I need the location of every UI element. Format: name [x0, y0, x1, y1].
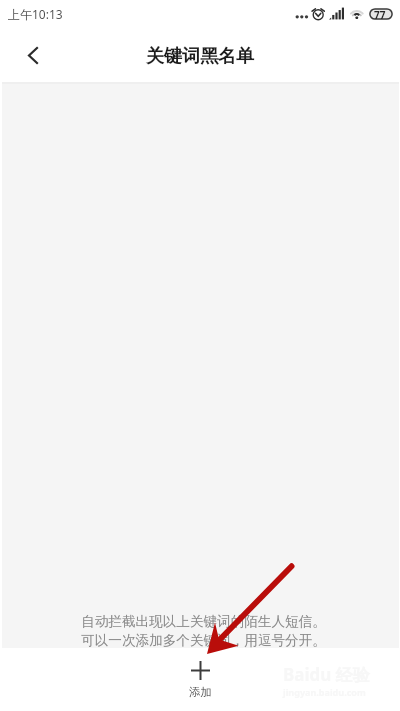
staticText: Baidu 经验: [283, 663, 370, 686]
staticText: 添加: [189, 685, 212, 699]
staticText: 77: [374, 8, 386, 20]
staticText: 上午10:13: [8, 6, 63, 22]
staticText: jingyan.baidu.com: [283, 686, 366, 698]
staticText: 关键词黑名单: [146, 45, 254, 68]
staticText: 可以一次添加多个关键词，用逗号分开。: [81, 632, 326, 649]
staticText: 自动拦截出现以上关键词的陌生人短信。: [81, 613, 326, 630]
button[interactable]: Back: [0, 30, 52, 82]
button[interactable]: 添加: [0, 648, 400, 711]
